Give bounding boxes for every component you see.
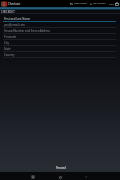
staticText: CHECKOUT: [1, 10, 15, 13]
button[interactable]: Cart: [109, 2, 119, 6]
button[interactable]: State: [0, 46, 120, 52]
staticText: Cart: [109, 3, 114, 6]
button[interactable]: Back: [82, 173, 90, 180]
button[interactable]: City: [0, 40, 120, 46]
staticText: Checkout: [8, 2, 21, 6]
button[interactable]: First and Last Name: [0, 16, 120, 22]
staticText: City: [4, 41, 9, 45]
staticText: House/Number and Street Address: [4, 29, 50, 33]
staticText: Country: [4, 53, 15, 57]
button[interactable]: Home: [56, 173, 64, 180]
button[interactable]: My Account: [90, 2, 106, 5]
staticText: Postcode: [4, 35, 17, 39]
staticText: you@email.com: [4, 23, 25, 27]
button[interactable]: you@email.com: [0, 22, 120, 28]
staticText: Proceed: [56, 166, 66, 170]
button[interactable]: Recents: [29, 173, 37, 180]
button[interactable]: House/Number and Street Address: [0, 28, 120, 34]
staticText: State: [4, 47, 11, 51]
button[interactable]: Proceed: [55, 166, 67, 170]
button[interactable]: Country: [0, 52, 120, 58]
staticText: Track Order: [74, 2, 87, 5]
staticText: My Account: [93, 2, 106, 5]
staticText: First and Last Name: [4, 17, 31, 21]
button[interactable]: Postcode: [0, 34, 120, 40]
button[interactable]: Track Order: [70, 2, 87, 5]
